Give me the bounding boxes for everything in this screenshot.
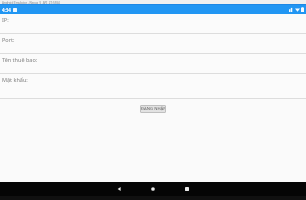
staticText: 4:34 <box>2 7 11 13</box>
staticText: Android Emulator - Nexus_5_API_27:5554 <box>2 1 60 5</box>
button[interactable]: IP: <box>0 14 306 33</box>
staticText: ĐĂNG NHẬP <box>141 106 166 112</box>
staticText: Tên thuê bao: <box>2 56 38 63</box>
button[interactable]: Home <box>136 182 170 196</box>
button[interactable]: ĐĂNG NHẬP <box>140 105 166 113</box>
button[interactable]: Back <box>102 182 136 196</box>
staticText: IP: <box>2 16 9 23</box>
button[interactable]: Tên thuê bao: <box>0 54 306 73</box>
button[interactable]: Port: <box>0 34 306 53</box>
button[interactable]: Mật khẩu: <box>0 74 306 98</box>
button[interactable]: Recent apps <box>170 182 204 196</box>
staticText: Port: <box>2 36 15 43</box>
staticText: Mật khẩu: <box>2 76 28 83</box>
